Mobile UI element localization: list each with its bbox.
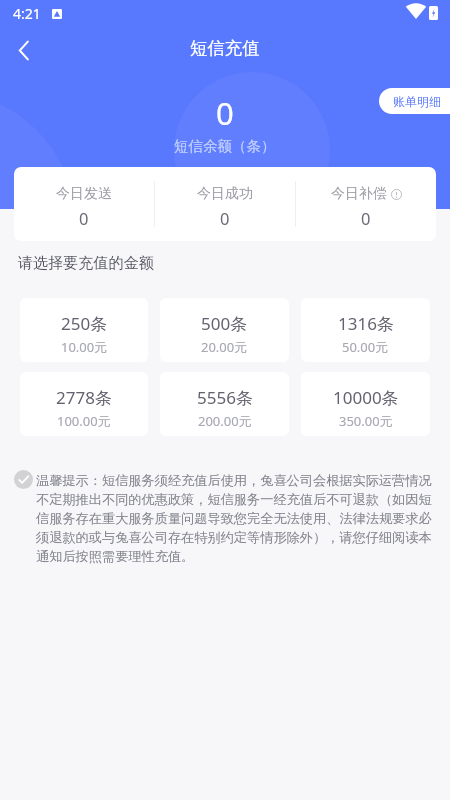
staticText: 10000条	[333, 386, 399, 409]
button[interactable]: 今日成功	[155, 182, 295, 226]
staticText: 250条	[61, 312, 108, 335]
button[interactable]: 1316条	[301, 298, 430, 362]
staticText: 4:21	[13, 4, 41, 23]
button[interactable]: 250条	[20, 298, 148, 362]
staticText: 350.00元	[339, 412, 393, 430]
staticText: 200.00元	[198, 412, 252, 430]
staticText: 5556条	[197, 386, 253, 409]
button[interactable]: 今日补偿	[296, 182, 436, 226]
button[interactable]: 5556条	[160, 372, 289, 436]
staticText: 温馨提示：短信服务须经充值后使用，兔喜公司会根据实际运营情况 不定期推出不同的优…	[36, 472, 432, 565]
staticText: 500条	[201, 312, 248, 335]
button[interactable]: 10000条	[301, 372, 430, 436]
button[interactable]: 2778条	[20, 372, 148, 436]
staticText: 账单明细	[393, 94, 441, 109]
button[interactable]: 500条	[160, 298, 289, 362]
button[interactable]: 账单明细	[379, 88, 450, 114]
staticText: 10.00元	[61, 338, 108, 356]
staticText: 1316条	[338, 312, 394, 335]
staticText: 50.00元	[342, 338, 389, 356]
staticText: 20.00元	[201, 338, 248, 356]
staticText: 今日补偿	[331, 185, 387, 203]
staticText: 今日成功	[197, 185, 253, 203]
staticText: 请选择要充值的金额	[18, 253, 154, 272]
staticText: 短信充值	[190, 37, 260, 59]
staticText: 2778条	[56, 386, 112, 409]
staticText: 0	[361, 207, 371, 229]
staticText: 0	[216, 92, 234, 134]
staticText: 0	[79, 207, 89, 229]
button[interactable]: 今日发送	[14, 182, 154, 226]
button[interactable]: Back	[2, 29, 46, 71]
staticText: 今日发送	[56, 185, 112, 203]
staticText: 短信余额（条）	[174, 137, 276, 155]
staticText: 0	[220, 207, 230, 229]
staticText: 100.00元	[57, 412, 111, 430]
